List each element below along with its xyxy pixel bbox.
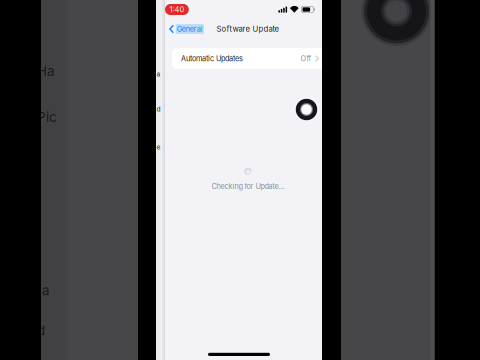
staticText: Pic [37,109,57,125]
staticText: a [156,70,160,78]
staticText: Automatic Updates [181,54,243,63]
staticText: General [177,25,203,33]
button[interactable]: Automatic Updates [172,48,331,69]
staticText: Ha [37,63,54,79]
staticText: 1:40 [169,5,184,14]
staticText: Checking for Update... [211,182,284,191]
button[interactable]: General [165,20,210,38]
staticText: d [156,105,160,113]
staticText: Software Update [216,24,279,34]
staticText: e [156,143,160,151]
staticText: ra [37,282,49,298]
staticText: Off [300,54,311,63]
staticText: d [37,322,45,338]
